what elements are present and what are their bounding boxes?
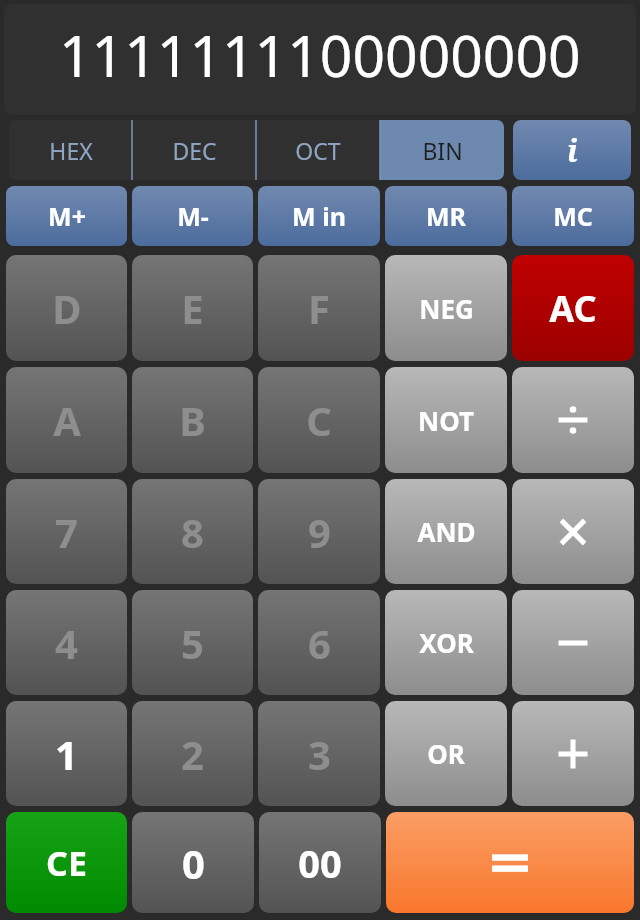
staticText: HEX — [49, 135, 93, 166]
button[interactable]: 7 — [6, 479, 127, 584]
staticText: NOT — [418, 403, 474, 438]
button[interactable]: 9 — [258, 479, 380, 584]
button[interactable]: Equals — [386, 812, 634, 913]
button[interactable]: BIN — [380, 120, 504, 180]
button[interactable]: E — [132, 255, 253, 361]
staticText: 9 — [308, 505, 331, 559]
staticText: C — [306, 393, 332, 447]
button[interactable]: M in — [258, 186, 380, 246]
button[interactable]: Add — [512, 701, 634, 806]
staticText: NEG — [419, 291, 474, 326]
staticText: 2 — [181, 727, 204, 781]
button[interactable]: 00 — [259, 812, 381, 913]
staticText: 6 — [308, 616, 331, 670]
button[interactable]: D — [6, 255, 127, 361]
staticText: D — [52, 281, 82, 335]
staticText: A — [53, 393, 81, 447]
button[interactable]: MC — [512, 186, 634, 246]
staticText: F — [308, 281, 330, 335]
staticText: M- — [177, 199, 209, 233]
staticText: i — [567, 130, 578, 171]
staticText: OCT — [295, 135, 341, 166]
button[interactable]: 4 — [6, 590, 127, 695]
button[interactable]: AC — [512, 255, 634, 361]
staticText: B — [179, 393, 206, 447]
other: Multiply — [551, 510, 595, 554]
staticText: MC — [553, 199, 593, 233]
staticText: OR — [427, 736, 465, 771]
staticText: 1 — [55, 727, 78, 781]
button[interactable]: CE — [6, 812, 127, 913]
staticText: 4 — [55, 616, 78, 670]
button[interactable]: M+ — [6, 186, 127, 246]
staticText: MR — [426, 199, 466, 233]
button[interactable]: OCT — [256, 120, 380, 180]
button[interactable]: 5 — [132, 590, 253, 695]
staticText: 3 — [308, 727, 331, 781]
button[interactable]: DEC — [132, 120, 256, 180]
button[interactable]: OR — [385, 701, 507, 806]
staticText: M in — [292, 199, 346, 233]
staticText: AC — [549, 284, 597, 333]
button[interactable]: Subtract — [512, 590, 634, 695]
staticText: AND — [417, 514, 476, 549]
button[interactable]: Info — [513, 120, 631, 180]
button[interactable]: HEX — [9, 120, 132, 180]
other: Add — [551, 732, 595, 776]
staticText: BIN — [422, 135, 463, 166]
staticText: 5 — [181, 616, 204, 670]
button[interactable]: 3 — [258, 701, 380, 806]
staticText: 8 — [181, 505, 204, 559]
other: Divide — [551, 398, 595, 442]
button[interactable]: NEG — [385, 255, 507, 361]
button[interactable]: A — [6, 367, 127, 473]
button[interactable]: 2 — [132, 701, 253, 806]
button[interactable]: 1 — [6, 701, 127, 806]
button[interactable]: MR — [385, 186, 507, 246]
button[interactable]: 8 — [132, 479, 253, 584]
button[interactable]: XOR — [385, 590, 507, 695]
button[interactable]: B — [132, 367, 253, 473]
staticText: DEC — [172, 135, 217, 166]
button[interactable]: Divide — [512, 367, 634, 473]
staticText: 00 — [298, 837, 342, 889]
staticText: CE — [46, 840, 87, 886]
staticText: 0 — [182, 836, 205, 890]
button[interactable]: 0 — [132, 812, 254, 913]
button[interactable]: Multiply — [512, 479, 634, 584]
button[interactable]: C — [258, 367, 380, 473]
button[interactable]: 6 — [258, 590, 380, 695]
button[interactable]: F — [258, 255, 380, 361]
button[interactable]: NOT — [385, 367, 507, 473]
staticText: E — [181, 281, 204, 335]
staticText: XOR — [419, 625, 474, 660]
button[interactable]: M- — [132, 186, 253, 246]
other: Subtract — [551, 621, 595, 665]
staticText: 7 — [55, 505, 78, 559]
staticText: M+ — [48, 199, 86, 233]
staticText: 1111111100000000 — [59, 16, 581, 94]
button[interactable]: AND — [385, 479, 507, 584]
